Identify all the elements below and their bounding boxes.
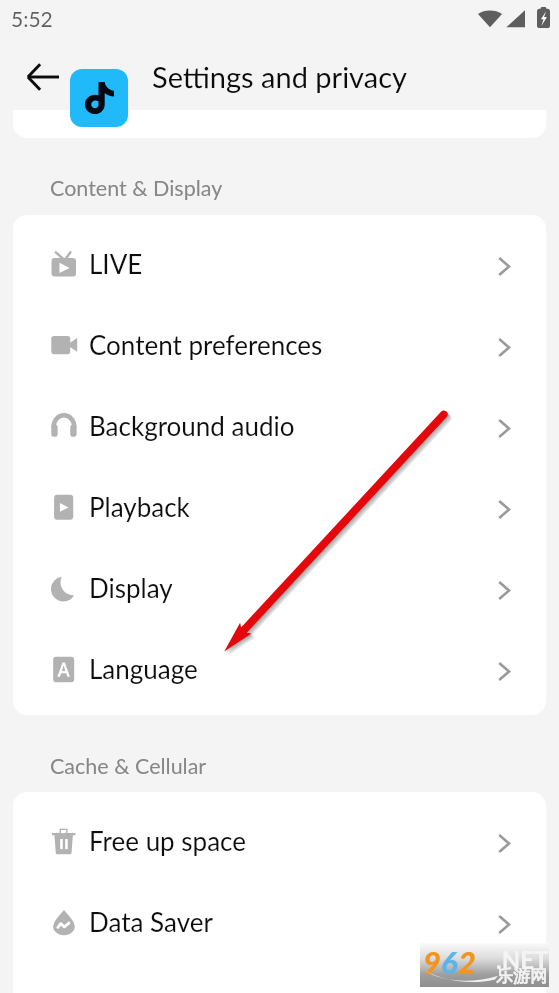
button[interactable]: Back: [21, 55, 65, 99]
button[interactable]: Data Saver: [13, 881, 546, 962]
staticText: 9: [423, 943, 441, 980]
button[interactable]: Background audio: [13, 385, 546, 466]
button[interactable]: Content preferences: [13, 304, 546, 385]
staticText: Background audio: [89, 410, 295, 441]
staticText: .NET: [496, 945, 549, 974]
button[interactable]: [13, 962, 546, 993]
staticText: 6: [441, 943, 458, 980]
staticText: Cache & Cellular: [50, 753, 207, 779]
button[interactable]: Language: [13, 628, 546, 709]
button[interactable]: LIVE: [13, 223, 546, 304]
staticText: Free up space: [89, 825, 247, 856]
staticText: 乐游网: [496, 966, 547, 987]
staticText: Playback: [89, 491, 190, 522]
button[interactable]: Free up space: [13, 800, 546, 881]
staticText: Data Saver: [89, 906, 213, 937]
staticText: Settings and privacy: [152, 59, 407, 94]
staticText: Language: [89, 653, 198, 684]
staticText: Display: [89, 572, 173, 603]
staticText: LIVE: [89, 248, 143, 279]
staticText: Content preferences: [89, 329, 323, 360]
staticText: 5:52: [11, 6, 53, 31]
staticText: Content & Display: [50, 175, 223, 201]
staticText: 2: [458, 943, 476, 980]
button[interactable]: Playback: [13, 466, 546, 547]
button[interactable]: Display: [13, 547, 546, 628]
